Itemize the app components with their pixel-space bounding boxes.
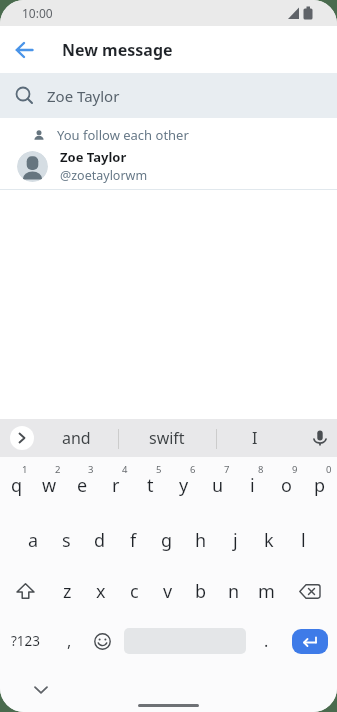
button[interactable] — [10, 426, 34, 450]
button[interactable]: i — [235, 459, 269, 511]
button[interactable]: f — [116, 514, 150, 566]
staticText: 7 — [224, 463, 230, 476]
staticText: y — [179, 473, 189, 498]
staticText: w — [42, 473, 57, 498]
staticText: n — [228, 579, 240, 604]
staticText: h — [195, 528, 207, 553]
staticText: 5 — [156, 463, 162, 476]
staticText: b — [195, 579, 207, 604]
staticText: 9 — [292, 463, 298, 476]
staticText: Zoe Taylor — [47, 86, 120, 106]
staticText: 6 — [190, 463, 196, 476]
staticText: I — [252, 427, 258, 449]
button[interactable] — [0, 565, 50, 617]
staticText: 4 — [122, 463, 128, 476]
staticText: x — [96, 579, 106, 604]
button[interactable]: u — [201, 459, 235, 511]
staticText: s — [62, 528, 71, 553]
staticText: j — [233, 528, 238, 553]
staticText: k — [264, 528, 274, 553]
staticText: v — [163, 579, 173, 604]
button[interactable]: a — [17, 514, 50, 566]
button[interactable]: m — [250, 565, 283, 617]
button[interactable]: e — [66, 459, 99, 511]
staticText: q — [11, 473, 23, 498]
button[interactable] — [8, 34, 40, 66]
button[interactable]: j — [218, 514, 252, 566]
staticText: 1 — [22, 463, 28, 476]
staticText: m — [258, 579, 275, 604]
staticText: o — [281, 473, 292, 498]
staticText: and — [62, 427, 91, 449]
button[interactable]: I — [215, 419, 295, 457]
staticText: , — [67, 630, 72, 652]
button[interactable] — [292, 629, 328, 654]
staticText: g — [161, 528, 173, 553]
button[interactable] — [84, 615, 120, 667]
button[interactable]: g — [150, 514, 184, 566]
staticText: 2 — [55, 463, 61, 476]
staticText: f — [130, 528, 137, 553]
button[interactable]: b — [184, 565, 217, 617]
button[interactable]: l — [286, 514, 320, 566]
staticText: c — [130, 579, 139, 604]
button[interactable]: c — [118, 565, 151, 617]
button[interactable]: k — [252, 514, 286, 566]
button[interactable]: o — [269, 459, 303, 511]
staticText: . — [264, 630, 269, 652]
button[interactable]: , — [52, 615, 86, 667]
staticText: 8 — [258, 463, 264, 476]
button[interactable] — [307, 425, 333, 451]
button[interactable]: v — [151, 565, 184, 617]
button[interactable]: q — [0, 459, 33, 511]
button[interactable]: y — [167, 459, 201, 511]
staticText: Zoe Taylor — [60, 148, 127, 166]
button[interactable]: . — [245, 615, 288, 667]
button[interactable]: s — [50, 514, 83, 566]
button[interactable]: d — [83, 514, 116, 566]
button[interactable] — [283, 565, 337, 617]
staticText: t — [147, 473, 154, 498]
button[interactable] — [20, 676, 62, 704]
staticText: 3 — [88, 463, 94, 476]
staticText: e — [77, 473, 88, 498]
staticText: New message — [62, 39, 173, 61]
staticText: 10:00 — [22, 5, 53, 21]
staticText: r — [112, 473, 120, 498]
button[interactable]: ?123 — [0, 615, 52, 667]
staticText: p — [314, 473, 326, 498]
button[interactable]: Zoe Taylor — [0, 73, 337, 118]
staticText: l — [301, 528, 306, 553]
button[interactable]: swift — [118, 419, 215, 457]
button[interactable]: and — [34, 419, 118, 457]
staticText: a — [28, 528, 39, 553]
staticText: swift — [149, 427, 185, 449]
staticText: i — [250, 473, 255, 498]
staticText: z — [63, 579, 72, 604]
staticText: You follow each other — [57, 126, 189, 144]
button[interactable]: n — [217, 565, 250, 617]
button[interactable]: Zoe Taylor — [0, 146, 337, 186]
button[interactable]: w — [33, 459, 66, 511]
staticText: 0 — [326, 463, 332, 476]
button[interactable]: h — [184, 514, 218, 566]
button[interactable]: r — [99, 459, 133, 511]
staticText: @zoetaylorwm — [60, 167, 148, 184]
button[interactable]: x — [84, 565, 118, 617]
button[interactable]: p — [303, 459, 337, 511]
button[interactable]: t — [133, 459, 167, 511]
staticText: u — [212, 473, 224, 498]
staticText: d — [94, 528, 106, 553]
button[interactable]: z — [50, 565, 84, 617]
staticText: ?123 — [11, 632, 41, 650]
